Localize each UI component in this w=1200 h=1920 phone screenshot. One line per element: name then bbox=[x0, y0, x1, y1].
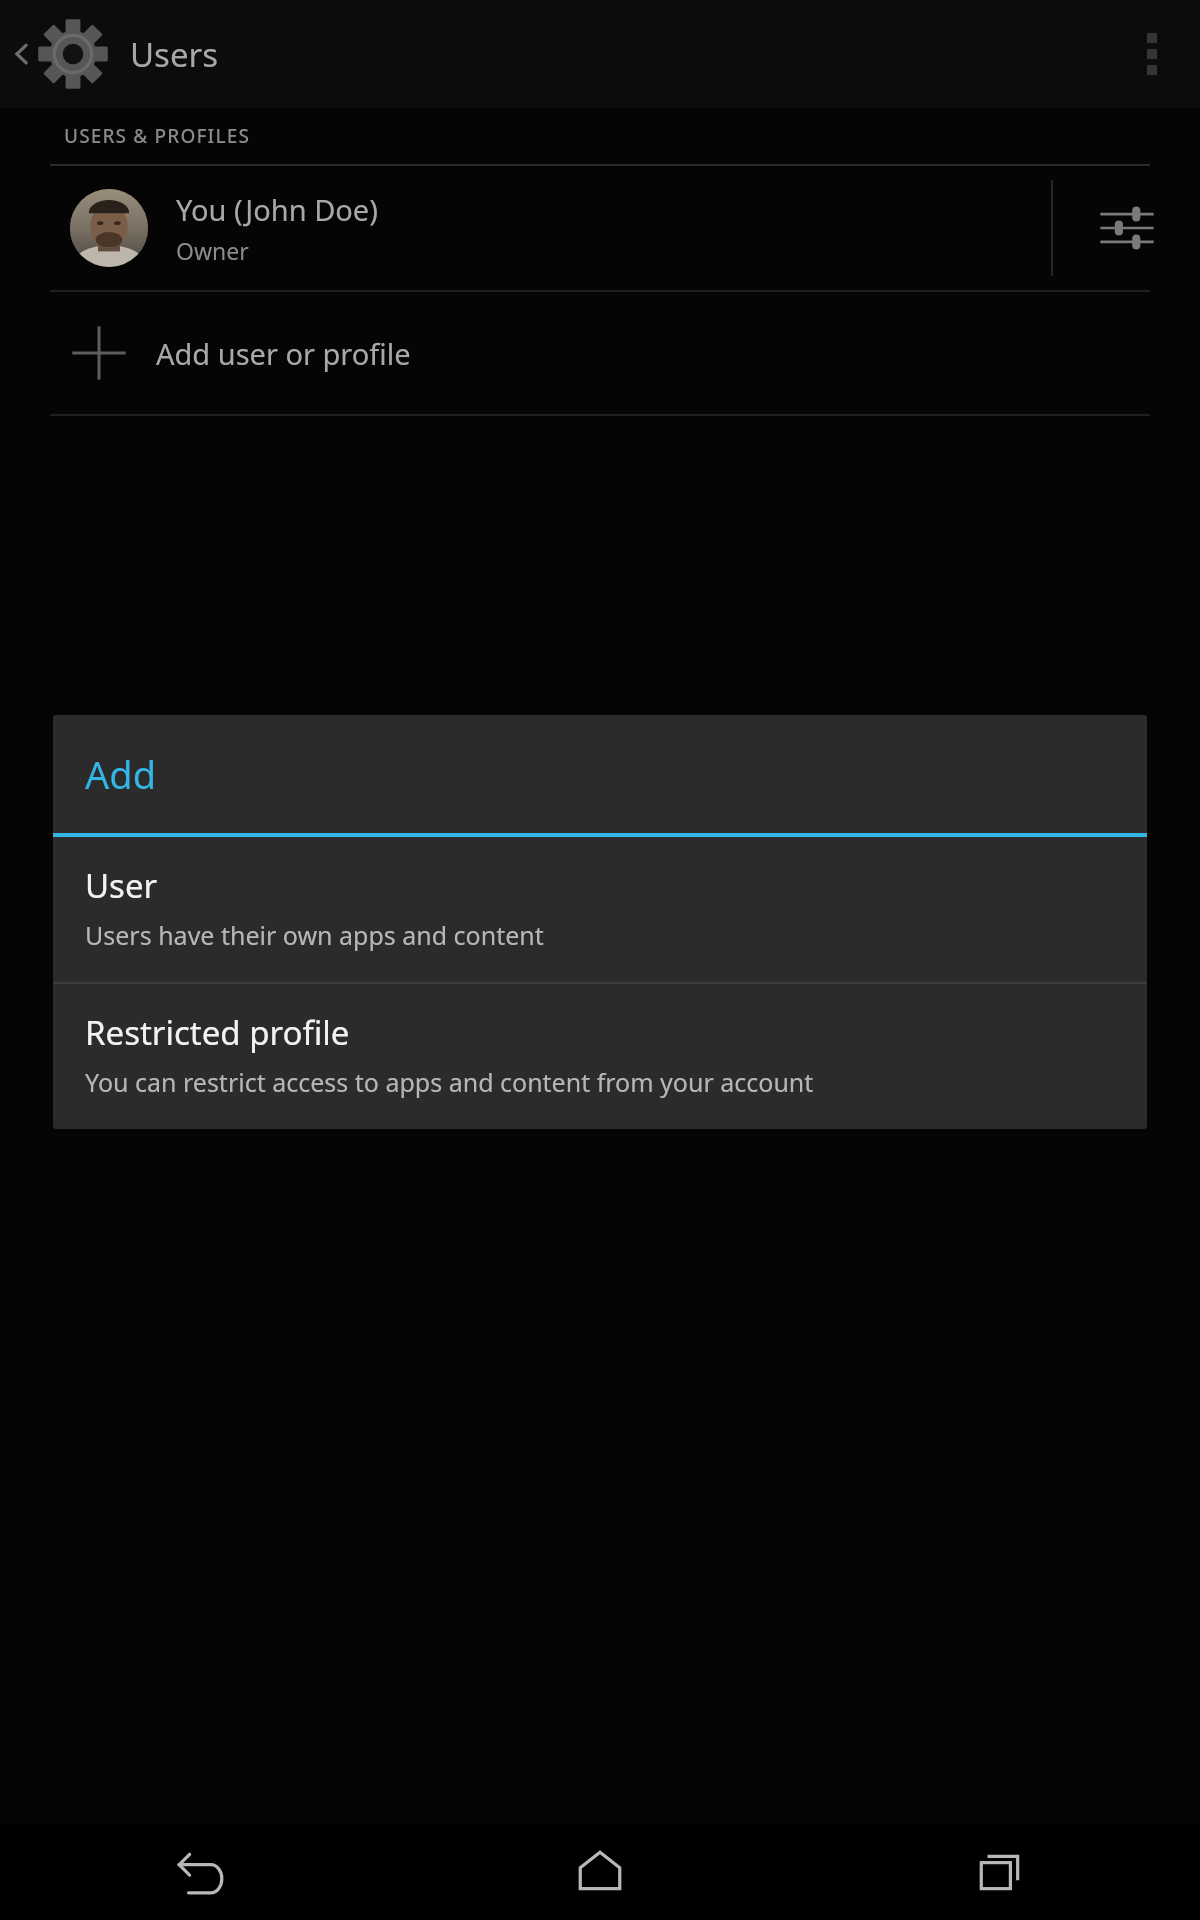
staticText: You (John Doe) bbox=[176, 190, 378, 229]
staticText: You can restrict access to apps and cont… bbox=[85, 1065, 814, 1099]
button[interactable]: More options bbox=[1104, 0, 1200, 108]
button[interactable]: Home bbox=[400, 1824, 800, 1920]
button[interactable]: You (John Doe) bbox=[0, 166, 1051, 290]
staticText: Add user or profile bbox=[156, 334, 411, 373]
staticText: Users have their own apps and content bbox=[85, 918, 544, 952]
button[interactable]: Add user or profile bbox=[0, 292, 1200, 414]
button[interactable]: Recent apps bbox=[800, 1824, 1200, 1920]
staticText: User bbox=[85, 863, 158, 908]
button[interactable]: Restricted profile bbox=[53, 984, 1147, 1129]
button[interactable]: User settings bbox=[1053, 166, 1200, 290]
button[interactable]: User bbox=[53, 837, 1147, 982]
staticText: Add bbox=[85, 748, 157, 800]
button[interactable]: Back bbox=[0, 1824, 400, 1920]
staticText: Users bbox=[130, 32, 218, 77]
staticText: Restricted profile bbox=[85, 1010, 350, 1055]
staticText: Owner bbox=[176, 235, 249, 266]
staticText: USERS & PROFILES bbox=[64, 123, 251, 149]
button[interactable]: Users bbox=[0, 9, 232, 99]
